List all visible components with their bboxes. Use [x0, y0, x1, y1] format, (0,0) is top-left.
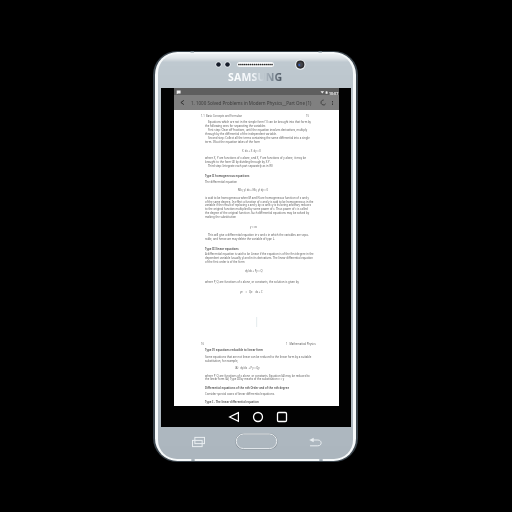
staticText: Differential equations of the nth Order …	[205, 386, 290, 390]
staticText: substitution, for example,	[205, 359, 239, 363]
staticText: Equations which are not in the simple fo…	[208, 120, 311, 124]
button[interactable]: Loading	[317, 95, 329, 110]
staticText: Some equations that are not linear can b…	[205, 355, 312, 359]
staticText: Consider special cases of linear differe…	[205, 392, 275, 396]
staticText: where X, Y are functions of x alone, and…	[205, 156, 307, 160]
staticText: through by the differential of the indep…	[205, 132, 277, 136]
staticText: 16	[201, 342, 204, 346]
staticText: Type I - The linear differential equatio…	[205, 400, 259, 404]
staticText: Type II homogeneous equations	[205, 174, 250, 178]
staticText: Type IV equations reducible to linear fo…	[205, 348, 264, 352]
staticText: SAMSUNG	[228, 70, 283, 84]
staticText: the linear form (A), Type III by means o…	[205, 377, 285, 381]
staticText: where P, Q are functions of x alone, or …	[205, 280, 299, 284]
staticText: 15	[306, 114, 309, 118]
staticText: M(x, y) dx + N(x, y) dy = 0	[238, 188, 268, 192]
staticText: ye = Qe dx + C	[240, 290, 263, 294]
staticText: Type III linear equations	[205, 247, 239, 251]
staticText: where P, Q are functions of x alone, or …	[205, 374, 310, 378]
staticText: rable, and hence we may delete the varia…	[205, 237, 275, 241]
button[interactable]: More options	[327, 95, 338, 110]
button[interactable]: Back	[309, 437, 322, 447]
staticText: the following ones for separating the va…	[205, 124, 266, 128]
staticText: dependent variable (usually y) and in it…	[205, 256, 313, 260]
staticText: to the original function multiplied by s…	[205, 207, 308, 211]
staticText: the degree of the original function. Suc…	[205, 211, 310, 215]
staticText: 1.1 Basic Concepts and Formulae	[201, 114, 242, 118]
staticText: (A) dy/dx + Py = Qy	[235, 366, 260, 370]
button[interactable]: Home	[249, 406, 266, 427]
staticText: of the first order is of the form	[205, 260, 245, 264]
staticText: brought to the form (4) by dividing thro…	[205, 160, 272, 164]
staticText: 10:07	[329, 91, 339, 96]
button[interactable]: Back	[176, 95, 188, 110]
staticText: y = vx	[250, 225, 257, 229]
staticText: A differential equation is said to be Li…	[205, 252, 314, 256]
staticText: The differential equation	[205, 180, 238, 184]
staticText: Second step: Collect all the terms conta…	[208, 136, 310, 140]
staticText: term. If but the equation takes of the f…	[205, 140, 261, 144]
button[interactable]: Recent apps	[192, 437, 205, 447]
button[interactable]: Back	[225, 406, 242, 427]
staticText: First step: Clear off fractions, until t…	[208, 128, 308, 132]
staticText: X dx + X dy = 0	[242, 149, 261, 153]
staticText: dy/dx + Py = Q	[245, 269, 263, 273]
staticText: 1 Mathematical Physics	[286, 342, 316, 346]
staticText: Third step: Integrate each part separate…	[208, 164, 273, 168]
staticText: variable if the result of replacing x an…	[205, 203, 311, 207]
staticText: making the substitution	[205, 215, 237, 219]
button[interactable]: Recents	[273, 406, 290, 427]
staticText: is said to be homogeneous when M and N a…	[205, 196, 309, 200]
staticText: 1. 1000 Solved Problems in Modern Physic…	[191, 100, 312, 106]
staticText: This will give a differential equation i…	[208, 233, 309, 237]
staticText: of the same degree. In effect a function…	[205, 200, 314, 204]
button[interactable]: Home	[236, 434, 277, 449]
